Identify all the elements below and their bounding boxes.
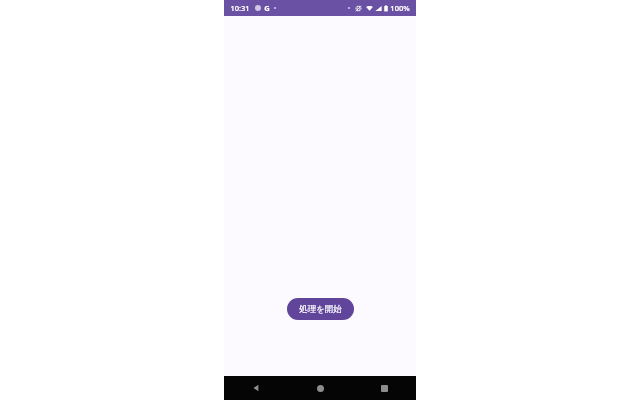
button[interactable]: 処理を開始 xyxy=(287,298,354,320)
staticText: G xyxy=(264,3,270,13)
button[interactable]: Recent apps xyxy=(352,376,416,400)
button[interactable]: Back xyxy=(224,376,288,400)
staticText: 10:31 xyxy=(230,3,250,13)
staticText: 100% xyxy=(390,3,410,13)
staticText: 処理を開始 xyxy=(299,304,342,315)
button[interactable]: Home xyxy=(288,376,352,400)
